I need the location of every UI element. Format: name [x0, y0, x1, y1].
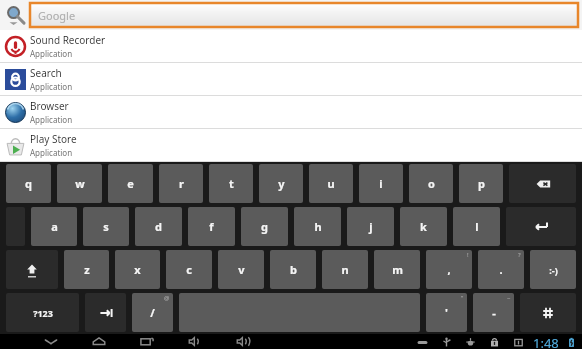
button[interactable]: o — [409, 164, 453, 203]
button[interactable]: s — [83, 207, 129, 246]
button[interactable]: Search scope — [0, 0, 30, 30]
staticText: s — [103, 219, 109, 234]
button[interactable]: ' — [426, 293, 467, 332]
button[interactable]: u — [309, 164, 353, 203]
button[interactable]: l — [453, 207, 500, 246]
other: USB — [439, 335, 453, 349]
staticText: q — [25, 176, 32, 191]
staticText: j — [369, 219, 373, 234]
button[interactable]: r — [159, 164, 203, 203]
button[interactable]: Google — [30, 3, 578, 27]
button[interactable]: ?123 — [6, 293, 79, 332]
button[interactable]: . — [478, 250, 524, 289]
button[interactable]: t — [209, 164, 253, 203]
button[interactable]: v — [218, 250, 264, 289]
staticText: f — [209, 219, 214, 234]
staticText: p — [478, 176, 485, 191]
button[interactable]: / — [132, 293, 173, 332]
button[interactable]: Home — [88, 334, 110, 349]
staticText: n — [341, 262, 349, 277]
staticText: Application — [30, 81, 73, 92]
other: Battery — [564, 335, 578, 349]
button[interactable]: Volume up — [232, 334, 254, 349]
other: Debug — [463, 335, 477, 349]
button[interactable]: Search — [0, 63, 582, 95]
staticText: @ — [164, 294, 170, 302]
staticText: b — [290, 262, 297, 277]
button[interactable]: Sound Recorder — [0, 30, 582, 62]
staticText: ' — [445, 305, 448, 320]
staticText: 1:48 — [533, 334, 559, 349]
button[interactable]: z — [64, 250, 109, 289]
staticText: w — [75, 176, 85, 191]
staticText: ~ — [507, 294, 511, 302]
staticText: c — [186, 262, 192, 277]
button[interactable]: b — [270, 250, 316, 289]
staticText: Google — [38, 8, 76, 23]
button[interactable]: i — [359, 164, 403, 203]
other: Download — [487, 335, 501, 349]
button[interactable]: a — [31, 207, 77, 246]
staticText: t — [229, 176, 234, 191]
staticText: Play Store — [30, 132, 77, 146]
button[interactable]: h — [294, 207, 341, 246]
staticText: x — [134, 262, 141, 277]
button[interactable]: , — [426, 250, 472, 289]
button[interactable]: x — [115, 250, 160, 289]
button[interactable]: :-) — [530, 250, 576, 289]
button[interactable]: k — [400, 207, 447, 246]
staticText: h — [314, 219, 322, 234]
staticText: g — [261, 219, 268, 234]
staticText: m — [392, 262, 403, 277]
staticText: Application — [30, 114, 73, 125]
button[interactable]: j — [347, 207, 394, 246]
staticText: . — [499, 262, 503, 277]
staticText: Browser — [30, 99, 69, 113]
staticText: r — [179, 176, 184, 191]
staticText: i — [379, 176, 383, 191]
button[interactable]: e — [108, 164, 153, 203]
staticText: Application — [30, 48, 73, 59]
other: SD card — [511, 335, 525, 349]
staticText: y — [278, 176, 285, 191]
button[interactable]: p — [459, 164, 503, 203]
button[interactable]: ime — [520, 293, 576, 332]
button[interactable]: Back — [40, 334, 62, 349]
button[interactable]: c — [166, 250, 212, 289]
staticText: l — [475, 219, 479, 234]
button[interactable]: enter — [506, 207, 576, 246]
button[interactable]: y — [259, 164, 303, 203]
button[interactable]: bksp — [509, 164, 576, 203]
button[interactable]: g — [241, 207, 288, 246]
staticText: / — [150, 305, 155, 320]
staticText: d — [155, 219, 162, 234]
button[interactable]: d — [135, 207, 182, 246]
button[interactable]: Recents — [136, 334, 158, 349]
staticText: v — [238, 262, 245, 277]
button[interactable]: Play Store — [0, 129, 582, 161]
staticText: u — [327, 176, 335, 191]
button[interactable]: shift — [6, 250, 58, 289]
button[interactable]: m — [374, 250, 420, 289]
button[interactable]: f — [188, 207, 235, 246]
staticText: " — [461, 294, 464, 302]
button[interactable]: w — [57, 164, 102, 203]
button[interactable]: - — [473, 293, 514, 332]
staticText: ! — [467, 251, 469, 259]
button[interactable]: Volume down — [184, 334, 206, 349]
staticText: ?123 — [33, 307, 53, 319]
staticText: z — [84, 262, 90, 277]
staticText: k — [420, 219, 427, 234]
button[interactable]: tab — [85, 293, 126, 332]
button[interactable]: q — [6, 164, 51, 203]
staticText: a — [51, 219, 58, 234]
staticText: Application — [30, 147, 73, 158]
staticText: o — [428, 176, 435, 191]
staticText: Search — [30, 66, 62, 80]
button[interactable]: n — [322, 250, 368, 289]
button[interactable]: Browser — [0, 96, 582, 128]
other: Keyboard — [415, 335, 429, 349]
staticText: ? — [518, 251, 521, 259]
